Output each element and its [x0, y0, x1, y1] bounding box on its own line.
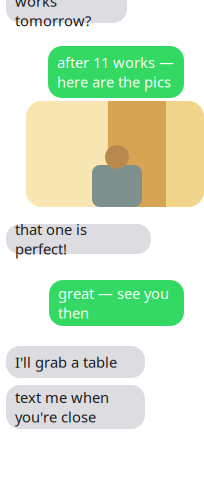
- button[interactable]: that one is perfect!: [6, 224, 151, 254]
- button[interactable]: what time works tomorrow?: [6, 0, 127, 23]
- staticText: great — see you then: [58, 283, 169, 322]
- button[interactable]: text me when you're close: [6, 385, 145, 429]
- staticText: after 11 works — here are the pics: [57, 52, 174, 91]
- staticText: text me when you're close: [15, 387, 109, 426]
- button[interactable]: I'll grab a table: [6, 346, 145, 378]
- staticText: I'll grab a table: [15, 352, 117, 372]
- button[interactable]: Photo attachment: [26, 101, 204, 207]
- staticText: what time works tomorrow?: [15, 0, 91, 30]
- staticText: that one is perfect!: [15, 219, 87, 258]
- button[interactable]: after 11 works — here are the pics: [48, 46, 184, 98]
- button[interactable]: great — see you then: [49, 280, 184, 326]
